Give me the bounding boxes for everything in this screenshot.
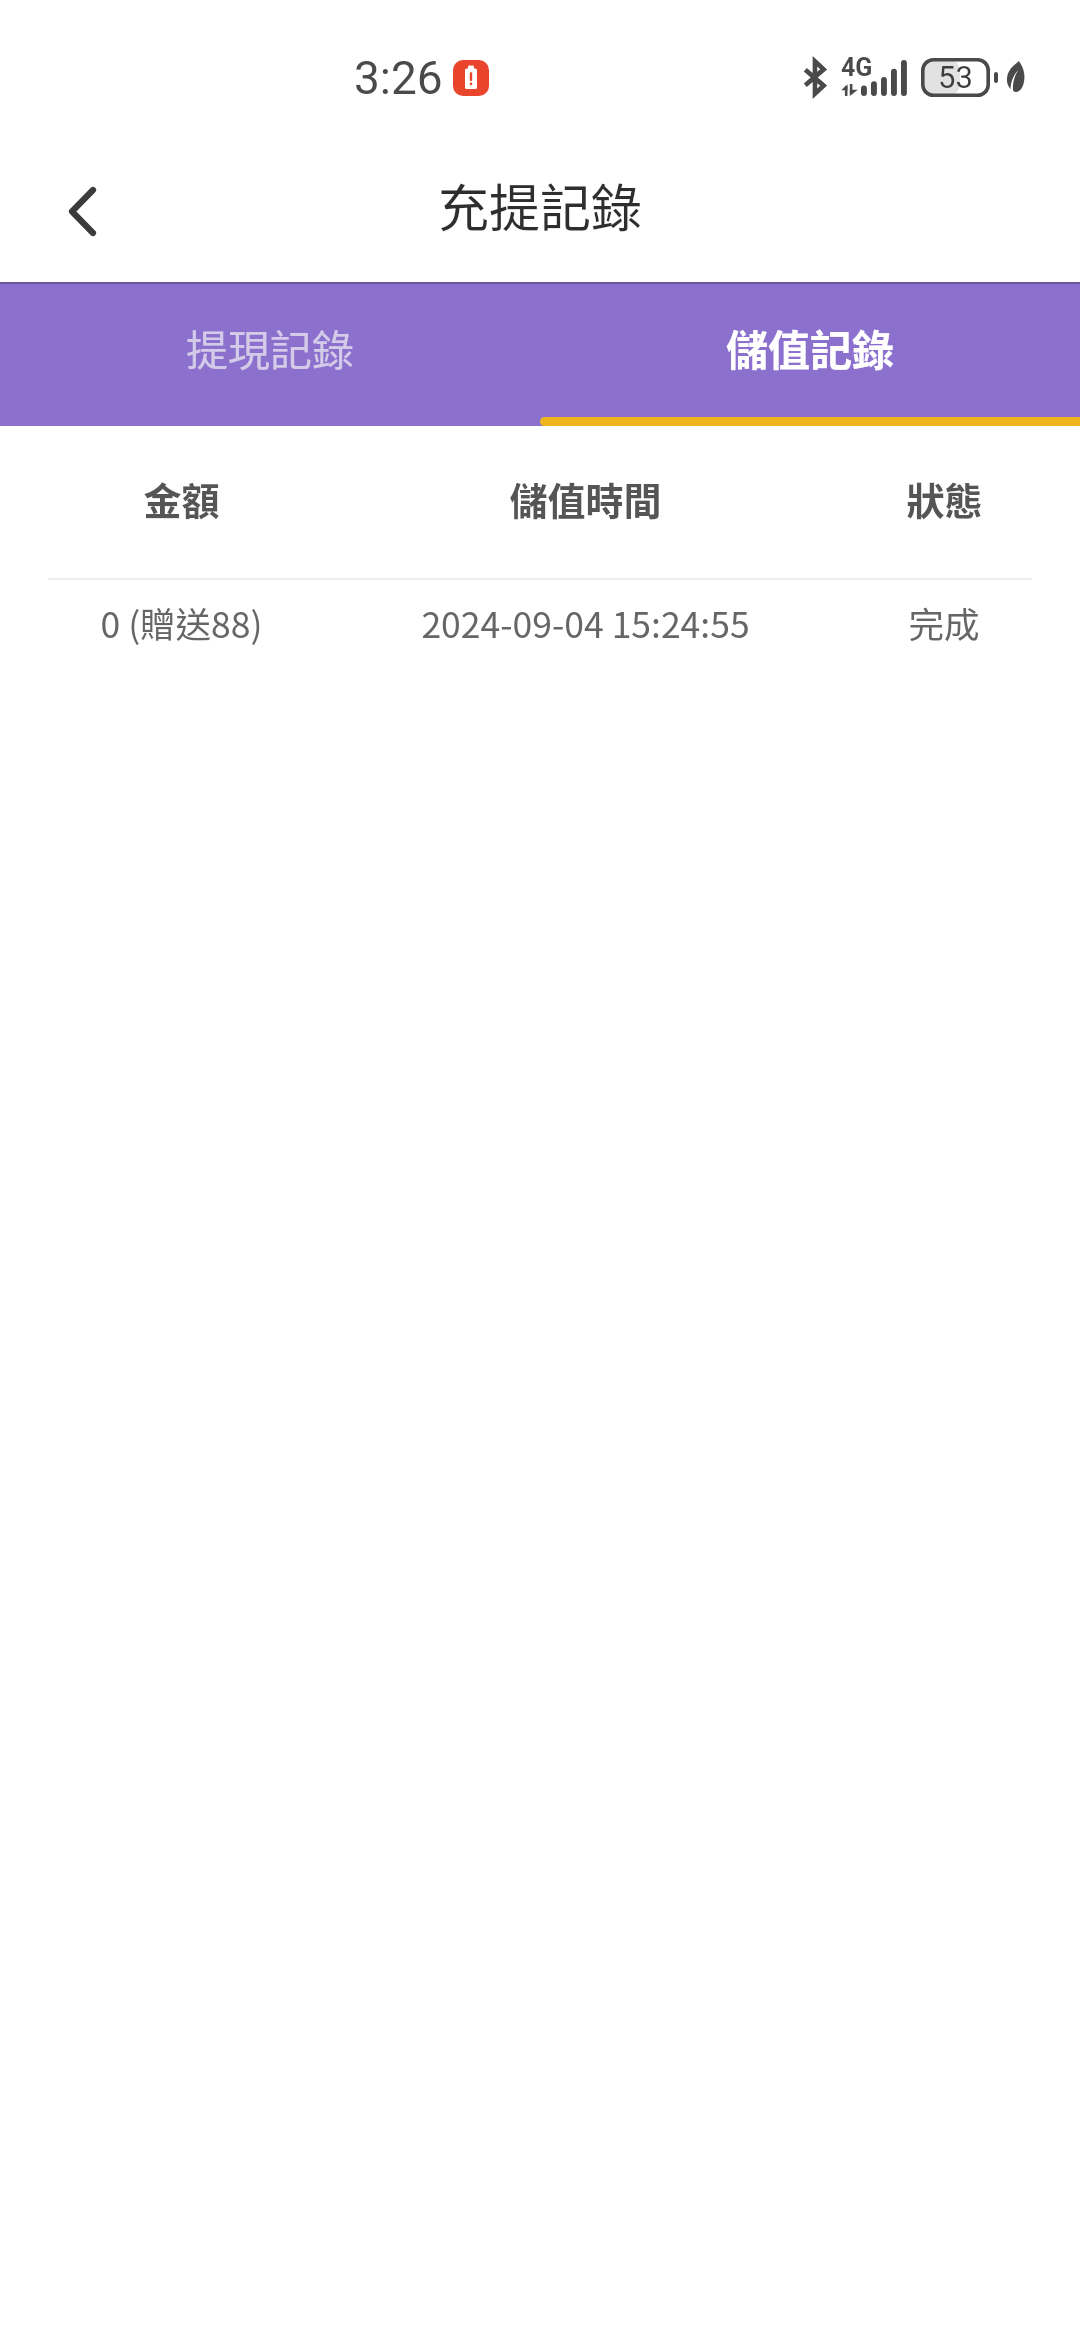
button[interactable]: 儲值記錄 [540, 282, 1080, 426]
staticText: 3:26 [354, 51, 443, 105]
button[interactable]: Back [0, 146, 130, 276]
staticText: 2024-09-04 15:24:55 [421, 597, 750, 648]
staticText: 狀態 [906, 471, 983, 526]
staticText: 提現記錄 [186, 317, 355, 378]
staticText: 0 (贈送88) [100, 597, 263, 648]
staticText: 53 [938, 59, 973, 95]
staticText: 充提記錄 [438, 168, 643, 242]
button[interactable]: 提現記錄 [0, 282, 540, 426]
staticText: 4G [841, 53, 873, 82]
staticText: 金額 [143, 471, 220, 526]
staticText: 儲值時間 [509, 471, 662, 526]
staticText: 完成 [908, 597, 980, 648]
button[interactable]: 0 (贈送88) [0, 580, 1080, 676]
staticText: 儲值記錄 [726, 317, 895, 378]
